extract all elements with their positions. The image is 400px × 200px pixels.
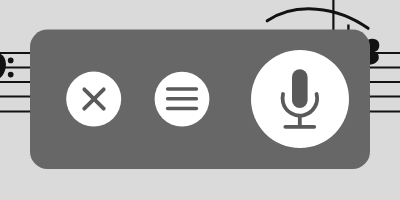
button[interactable]: Close bbox=[0, 0, 400, 200]
